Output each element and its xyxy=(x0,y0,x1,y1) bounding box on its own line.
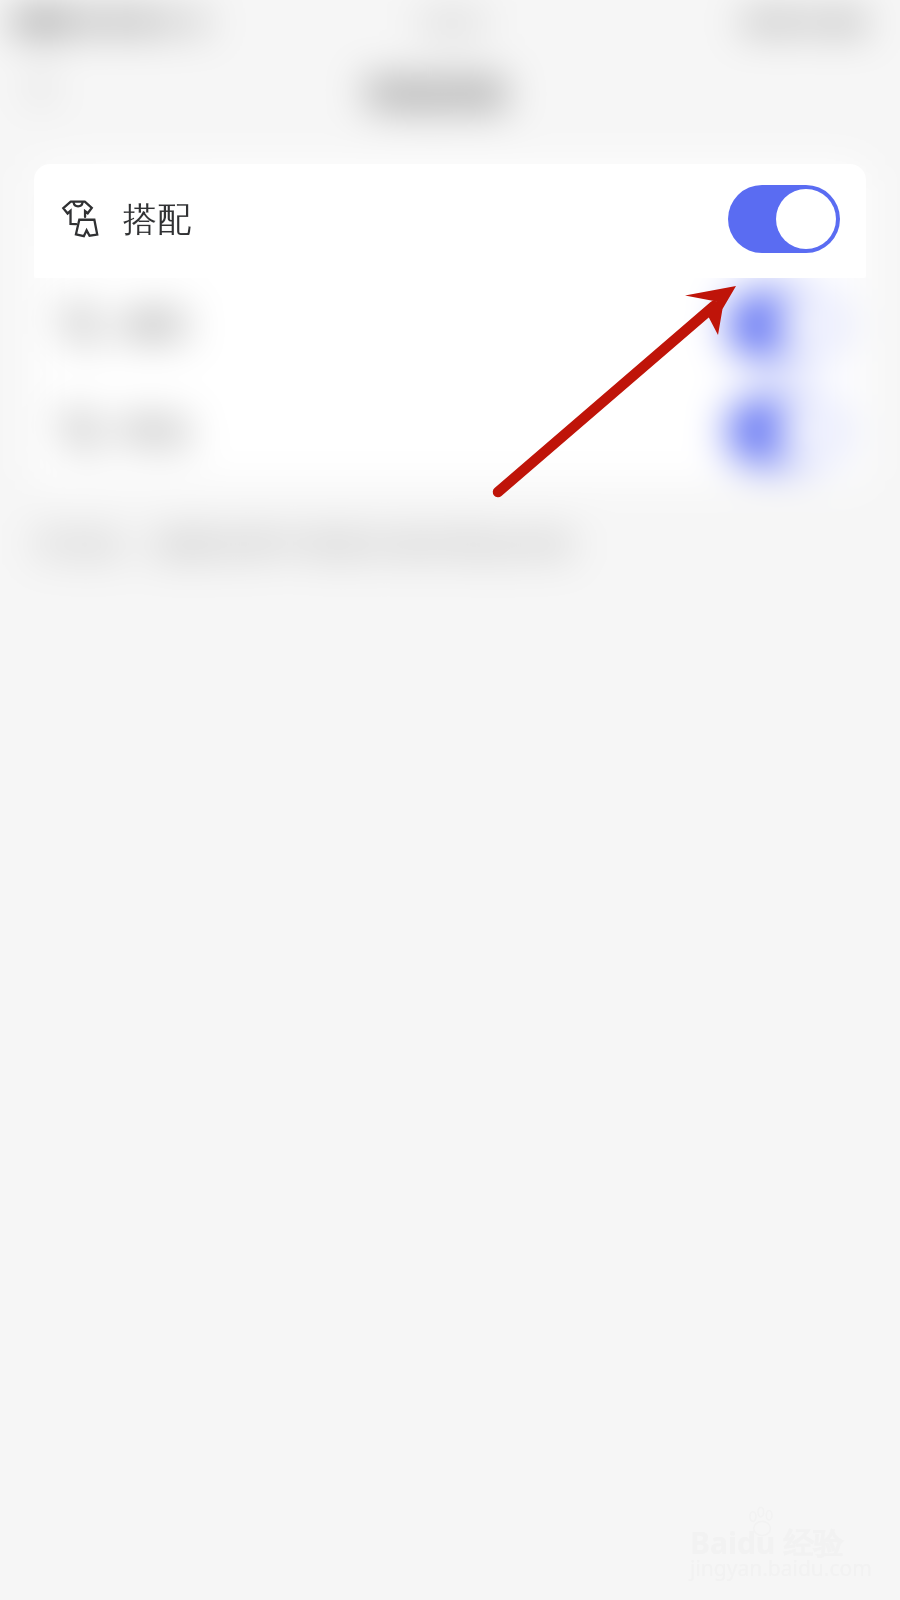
button[interactable]: 服装 xyxy=(34,270,866,376)
staticText: 智能搜索 xyxy=(364,71,508,116)
staticText: 鞋包 xyxy=(123,410,189,452)
button[interactable]: 搭配 xyxy=(34,164,866,278)
button[interactable]: Toggle xyxy=(728,291,840,359)
button[interactable]: Toggle xyxy=(728,185,840,253)
staticText: 搭配 xyxy=(123,198,189,240)
staticText: 服装 xyxy=(123,304,189,346)
button[interactable]: Toggle xyxy=(728,397,840,465)
button[interactable]: 鞋包 xyxy=(34,376,866,482)
staticText: 搭配 xyxy=(123,198,191,241)
button[interactable]: 搭配 xyxy=(34,164,866,270)
